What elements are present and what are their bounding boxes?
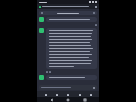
button[interactable]: Back [43, 92, 48, 97]
button[interactable]: Home [65, 92, 70, 97]
button[interactable]: Recent apps [83, 98, 87, 102]
button[interactable]: Send [39, 85, 97, 90]
button[interactable] [46, 75, 97, 80]
button[interactable] [46, 17, 97, 22]
other: Secure site [39, 6, 41, 8]
button[interactable]: Menu [88, 92, 93, 97]
button[interactable]: Home [66, 98, 70, 102]
button[interactable]: Back [50, 98, 54, 102]
button[interactable]: Tabs [77, 92, 82, 97]
button[interactable]: Menu [39, 11, 97, 15]
button[interactable]: Forward [54, 92, 59, 97]
button[interactable]: Secure site [37, 4, 99, 9]
button[interactable] [46, 28, 97, 69]
